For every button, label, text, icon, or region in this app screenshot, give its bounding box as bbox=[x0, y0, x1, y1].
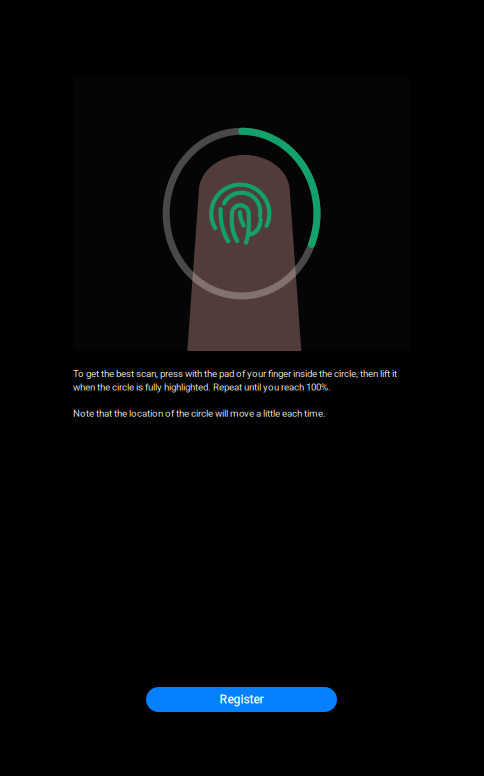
staticText: To get the best scan, press with the pad… bbox=[73, 368, 397, 393]
button[interactable]: Register bbox=[146, 687, 337, 712]
staticText: Note that the location of the circle wil… bbox=[73, 408, 326, 419]
staticText: Register bbox=[219, 692, 263, 707]
